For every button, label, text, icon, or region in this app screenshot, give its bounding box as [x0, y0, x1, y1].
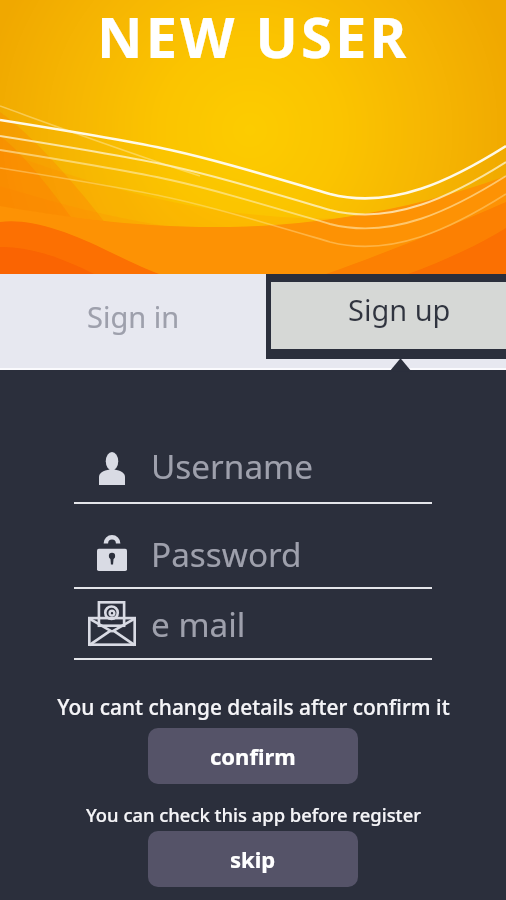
staticText: e mail [151, 601, 246, 646]
staticText: Password [151, 531, 302, 576]
button[interactable]: Sign in [0, 274, 266, 370]
button[interactable]: confirm [148, 728, 358, 784]
staticText: You cant change details after confirm it [57, 693, 450, 721]
button[interactable]: skip [148, 831, 358, 887]
staticText: Username [151, 443, 313, 488]
staticText: Sign up [348, 290, 451, 329]
button[interactable] [74, 423, 432, 504]
staticText: skip [230, 844, 276, 874]
staticText: NEW USER [97, 0, 410, 74]
staticText: confirm [210, 741, 296, 771]
staticText: You can check this app before register [86, 802, 421, 827]
staticText: Sign in [87, 297, 180, 336]
button[interactable]: Sign up [271, 282, 506, 349]
button[interactable] [74, 511, 432, 589]
button[interactable] [74, 581, 432, 660]
